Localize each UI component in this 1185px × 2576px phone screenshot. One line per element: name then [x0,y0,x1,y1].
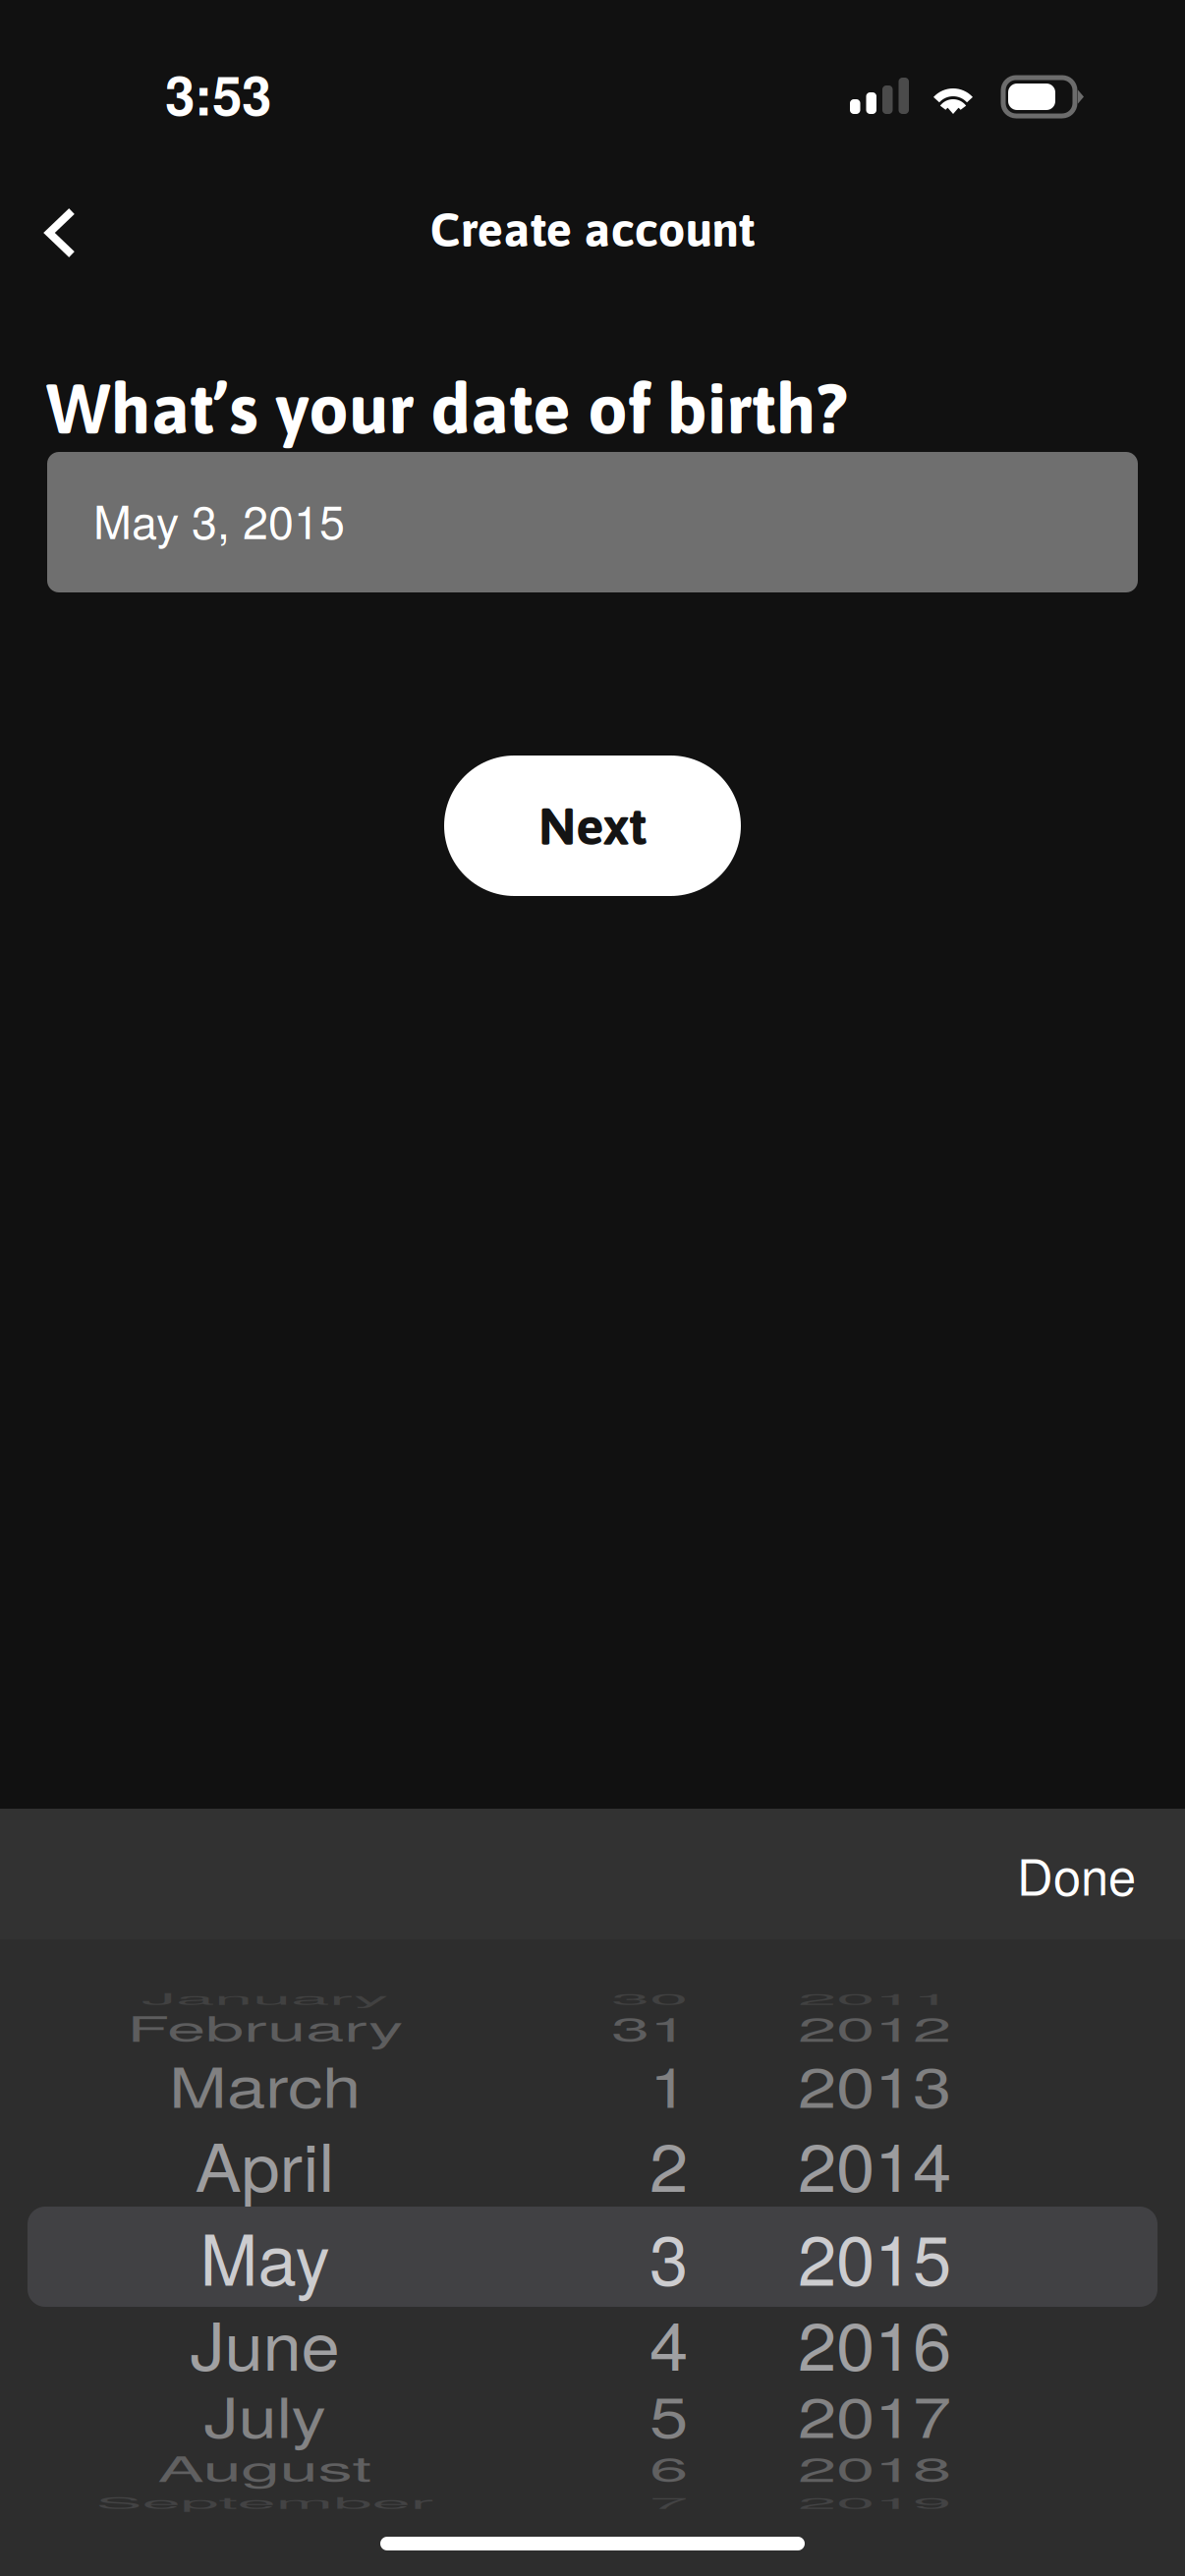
staticText: May [200,2206,330,2305]
staticText: 2013 [798,2034,951,2134]
staticText: 2018 [798,2417,951,2517]
staticText: 3 [649,2206,688,2305]
staticText: 30 [611,1949,688,2048]
staticText: June [190,2292,339,2392]
staticText: July [204,2364,326,2464]
staticText: March [169,2034,361,2134]
staticText: 31 [611,1977,688,2077]
button[interactable]: May 3, 2015 [47,452,1138,592]
staticText: 3:53 [165,55,271,132]
staticText: Done [1017,1838,1136,1910]
staticText: What’s your date of birth? [46,367,848,448]
staticText: May 3, 2015 [93,486,345,552]
staticText: September [96,2453,434,2552]
staticText: 2019 [798,2453,951,2552]
button[interactable]: Next [444,756,741,896]
staticText: 2017 [798,2364,951,2464]
staticText: 1 [649,2034,688,2134]
staticText: 2014 [798,2114,951,2213]
staticText: 2 [649,2114,688,2213]
staticText: January [141,1949,388,2048]
button[interactable]: Back [36,182,135,284]
staticText: Create account [430,201,755,257]
staticText: 5 [649,2364,688,2464]
staticText: 6 [649,2417,688,2517]
staticText: 4 [649,2292,688,2392]
staticText: 7 [649,2453,688,2552]
staticText: February [127,1977,403,2077]
staticText: April [195,2114,335,2213]
staticText: August [158,2417,372,2517]
staticText: Next [538,796,647,856]
staticText: 2012 [798,1977,951,2077]
button[interactable]: Done [993,1813,1159,1935]
staticText: 2011 [798,1949,951,2048]
staticText: 2015 [798,2206,951,2305]
staticText: 2016 [798,2292,951,2392]
